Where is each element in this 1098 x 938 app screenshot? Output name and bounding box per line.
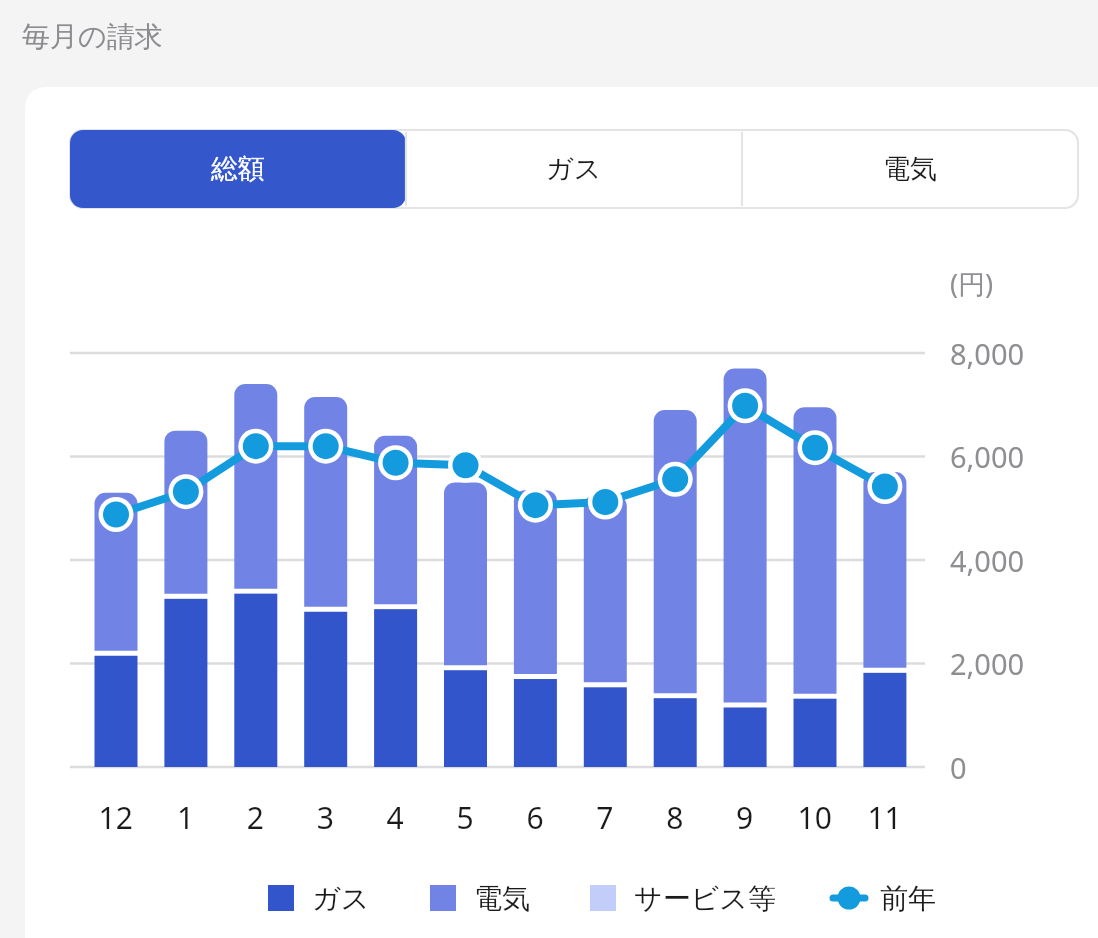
button[interactable]: 総額	[70, 130, 406, 208]
button[interactable]: 電気	[742, 130, 1078, 208]
button[interactable]: ガス	[406, 130, 742, 208]
